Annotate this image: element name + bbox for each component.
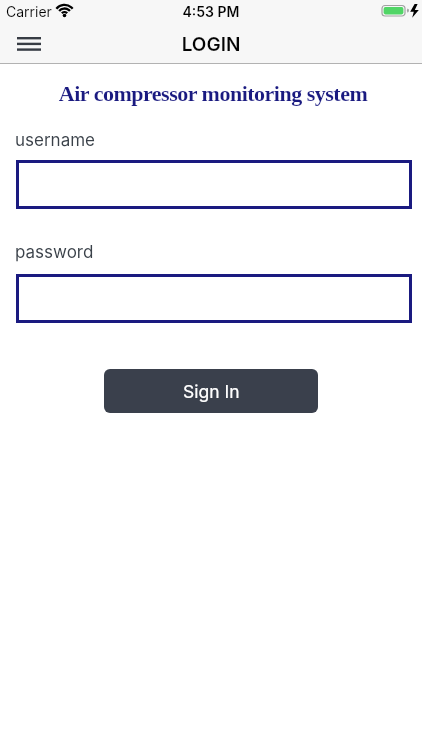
staticText: Carrier	[6, 3, 52, 20]
button[interactable]	[16, 160, 412, 209]
button[interactable]	[16, 274, 412, 323]
staticText: username	[15, 130, 95, 151]
button[interactable]	[10, 30, 48, 58]
staticText: password	[15, 242, 94, 263]
button[interactable]: Sign In	[104, 369, 318, 413]
staticText: 4:53 PM	[0, 3, 422, 20]
staticText: Sign In	[183, 381, 240, 402]
staticText: LOGIN	[0, 33, 422, 56]
staticText: Air compressor monitoring system	[2, 81, 422, 105]
